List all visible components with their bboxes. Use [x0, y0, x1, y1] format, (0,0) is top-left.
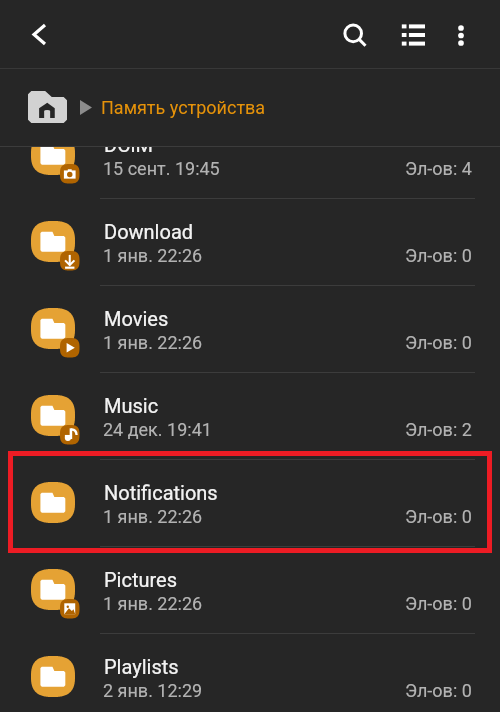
- button[interactable]: Память устройства: [101, 97, 266, 118]
- staticText: Movies: [104, 307, 169, 330]
- staticText: 1 янв. 22:26: [103, 506, 203, 527]
- staticText: Эл-ов: 0: [405, 593, 472, 614]
- staticText: Эл-ов: 2: [405, 419, 472, 440]
- button[interactable]: Movies: [0, 286, 500, 373]
- staticText: Эл-ов: 0: [405, 245, 472, 266]
- button[interactable]: Download: [0, 199, 500, 286]
- staticText: 24 дек. 19:41: [103, 419, 212, 440]
- button[interactable]: Search: [332, 12, 377, 57]
- button[interactable]: Pictures: [0, 547, 500, 634]
- staticText: 2 янв. 12:29: [103, 680, 203, 701]
- staticText: 1 янв. 22:26: [103, 593, 203, 614]
- staticText: Эл-ов: 4: [405, 158, 472, 179]
- staticText: 15 сент. 19:45: [103, 158, 220, 179]
- button[interactable]: Home: [28, 91, 67, 123]
- staticText: Pictures: [104, 568, 178, 591]
- button[interactable]: Playlists: [0, 634, 500, 712]
- staticText: 1 янв. 22:26: [103, 245, 203, 266]
- button[interactable]: View mode: [390, 11, 435, 56]
- staticText: 1 янв. 22:26: [103, 332, 203, 353]
- button[interactable]: Notifications: [0, 460, 500, 547]
- staticText: Music: [104, 394, 159, 417]
- staticText: Память устройства: [101, 97, 266, 118]
- staticText: Playlists: [104, 655, 179, 678]
- staticText: Эл-ов: 0: [405, 332, 472, 353]
- staticText: Эл-ов: 0: [405, 506, 472, 527]
- button[interactable]: More options: [438, 13, 483, 58]
- button[interactable]: DCIM: [0, 112, 500, 199]
- staticText: Notifications: [104, 481, 218, 504]
- staticText: Download: [104, 220, 194, 243]
- button[interactable]: Back: [17, 12, 61, 56]
- staticText: DCIM: [104, 133, 154, 156]
- staticText: Эл-ов: 0: [405, 680, 472, 701]
- button[interactable]: Music: [0, 373, 500, 460]
